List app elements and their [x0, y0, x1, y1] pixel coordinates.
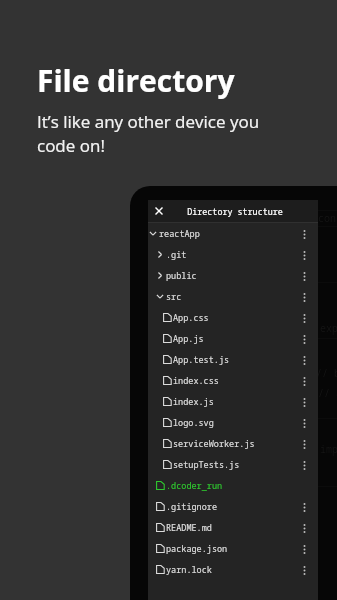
staticText: Directory structure [187, 206, 283, 217]
staticText: index.css [173, 375, 219, 387]
button[interactable]: More options for yarn.lock [290, 559, 318, 580]
staticText: .dcoder_run [166, 480, 223, 492]
button[interactable]: More options for index.css [290, 370, 318, 391]
staticText: const App = () => { // 0 used [318, 211, 337, 225]
staticText: App.js [173, 333, 204, 345]
staticText: yarn.lock [166, 564, 212, 576]
button[interactable]: More options for index.js [290, 391, 318, 412]
button[interactable]: App.js [148, 328, 318, 349]
button[interactable]: More options for README.md [290, 517, 318, 538]
button[interactable]: reactApp [148, 223, 318, 244]
button[interactable]: More options for setupTests.js [290, 454, 318, 475]
staticText: File directory [37, 60, 235, 101]
button[interactable]: package.json [148, 538, 318, 559]
button[interactable]: .gitignore [148, 496, 318, 517]
button[interactable]: src [148, 286, 318, 307]
button[interactable]: .git [148, 244, 318, 265]
button[interactable]: App.css [148, 307, 318, 328]
button[interactable]: index.js [148, 391, 318, 412]
staticText: export default directory [320, 321, 337, 335]
staticText: reactApp [159, 228, 200, 240]
button[interactable]: More options for serviceWorker.js [290, 433, 318, 454]
button[interactable]: serviceWorker.js [148, 433, 318, 454]
button[interactable]: More options for public [290, 265, 318, 286]
staticText: index.js [173, 396, 214, 408]
button[interactable]: index.css [148, 370, 318, 391]
button[interactable]: App.test.js [148, 349, 318, 370]
button[interactable]: README.md [148, 517, 318, 538]
staticText: public [166, 270, 197, 282]
staticText: package.json [166, 543, 228, 555]
button[interactable]: More options for App.js [290, 328, 318, 349]
button[interactable]: Close [148, 200, 318, 222]
button[interactable]: More options for src [290, 286, 318, 307]
staticText: src [166, 291, 182, 303]
button[interactable]: More options for logo.svg [290, 412, 318, 433]
staticText: serviceWorker.js [173, 438, 255, 450]
button[interactable]: logo.svg [148, 412, 318, 433]
button[interactable]: More options for reactApp [290, 223, 318, 244]
button[interactable]: More options for .git [290, 244, 318, 265]
button[interactable]: yarn.lock [148, 559, 318, 580]
staticText: README.md [166, 522, 212, 534]
staticText: App.css [173, 312, 209, 324]
button[interactable]: More options for .gitignore [290, 496, 318, 517]
staticText: import any [320, 442, 337, 456]
staticText: .git [166, 249, 187, 261]
button[interactable]: More options for App.css [290, 307, 318, 328]
button[interactable]: .dcoder_run [148, 475, 318, 496]
staticText: // build the project [316, 366, 337, 380]
staticText: App.test.js [173, 354, 230, 366]
button[interactable]: More options for package.json [290, 538, 318, 559]
button[interactable]: Close [148, 200, 170, 222]
staticText: It’s like any other device you code on! [37, 110, 260, 157]
button[interactable]: public [148, 265, 318, 286]
button[interactable]: setupTests.js [148, 454, 318, 475]
staticText: setupTests.js [173, 459, 240, 471]
staticText: .gitignore [166, 501, 218, 513]
button[interactable]: More options for App.test.js [290, 349, 318, 370]
staticText: logo.svg [173, 417, 214, 429]
